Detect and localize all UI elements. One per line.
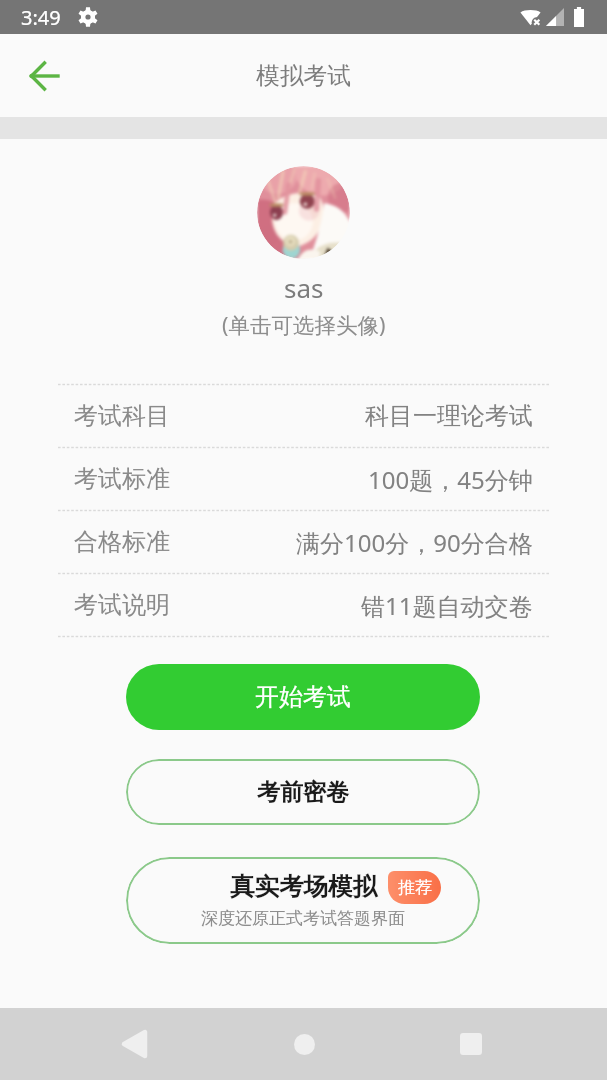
button[interactable]: Back (12, 44, 76, 108)
button[interactable]: Recents (441, 1014, 501, 1074)
button[interactable]: 合格标准 (58, 511, 549, 573)
button[interactable]: 考前密卷 (126, 759, 480, 825)
staticText: 考前密卷 (257, 778, 349, 807)
staticText: 合格标准 (74, 527, 170, 557)
button[interactable]: Home (274, 1014, 334, 1074)
button[interactable]: 考试标准 (58, 448, 549, 510)
staticText: 深度还原正式考试答题界面 (201, 908, 405, 929)
staticText: 考试说明 (74, 590, 170, 620)
button[interactable]: 考试说明 (58, 574, 549, 636)
button[interactable]: 考试科目 (58, 385, 549, 447)
staticText: 满分100分，90分合格 (296, 526, 533, 559)
staticText: (单击可选择头像) (222, 310, 386, 339)
staticText: 错11题自动交卷 (361, 589, 533, 622)
button[interactable]: Back (104, 1014, 164, 1074)
staticText: 真实考场模拟 (230, 871, 377, 902)
button[interactable]: 开始考试 (126, 664, 480, 730)
staticText: 科目一理论考试 (365, 401, 533, 431)
staticText: 模拟考试 (256, 61, 352, 91)
staticText: 3:49 (21, 4, 61, 31)
staticText: 开始考试 (255, 682, 351, 712)
staticText: 考试标准 (74, 464, 170, 494)
staticText: 推荐 (398, 877, 432, 898)
staticText: sas (284, 270, 324, 305)
button[interactable]: 真实考场模拟 (126, 857, 480, 944)
staticText: 考试科目 (74, 401, 170, 431)
button[interactable]: sas (180, 266, 427, 344)
button[interactable]: Choose avatar (257, 166, 350, 259)
staticText: 100题，45分钟 (368, 463, 533, 496)
